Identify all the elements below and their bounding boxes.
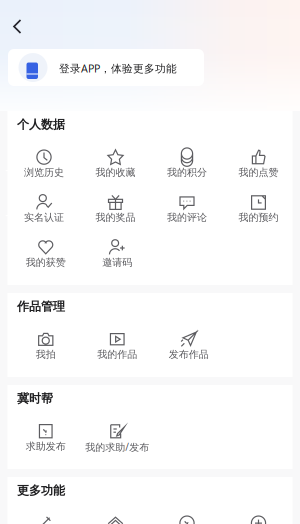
staticText: 我的奖品: [95, 211, 135, 224]
staticText: 发布作品: [169, 348, 209, 361]
staticText: 我拍: [36, 348, 56, 361]
button[interactable]: 我的求助/发布: [81, 422, 153, 467]
staticText: 我的点赞: [238, 166, 278, 179]
button[interactable]: 邀请码: [81, 238, 153, 283]
staticText: 登录APP，体验更多功能: [59, 61, 177, 75]
button[interactable]: Back: [6, 15, 30, 39]
button[interactable]: 浏览历史: [8, 148, 80, 193]
button[interactable]: 发布作品: [153, 330, 224, 375]
button[interactable]: 求助发布: [10, 422, 81, 467]
button[interactable]: 登录APP，体验更多功能: [8, 49, 204, 86]
button[interactable]: 设置: [8, 514, 80, 524]
button[interactable]: 我的奖品: [80, 193, 151, 238]
button[interactable]: 我拍: [10, 330, 81, 375]
staticText: 浏览历史: [24, 166, 64, 179]
staticText: 我的积分: [167, 166, 207, 179]
button[interactable]: 我的预约: [223, 193, 294, 238]
staticText: 我的评论: [167, 211, 207, 224]
button[interactable]: 实名认证: [8, 193, 80, 238]
staticText: 我的预约: [238, 211, 278, 224]
staticText: 求助发布: [26, 440, 66, 453]
staticText: 作品管理: [17, 299, 65, 314]
button[interactable]: 我的收藏: [80, 148, 151, 193]
button[interactable]: 我的积分: [151, 148, 223, 193]
button[interactable]: 我的点赞: [223, 148, 294, 193]
button[interactable]: 我的评论: [151, 193, 223, 238]
button[interactable]: 我的作品: [81, 330, 153, 375]
button[interactable]: 常见问题: [151, 514, 223, 524]
staticText: 实名认证: [24, 211, 64, 224]
button[interactable]: 关于我们: [223, 514, 294, 524]
staticText: 更多功能: [17, 483, 65, 498]
button[interactable]: 我的获赞: [10, 238, 81, 283]
button[interactable]: 首页: [80, 514, 151, 524]
staticText: 邀请码: [102, 256, 132, 269]
staticText: 我的作品: [97, 348, 137, 361]
staticText: 个人数据: [17, 117, 65, 132]
staticText: 冀时帮: [17, 391, 53, 406]
staticText: 我的收藏: [95, 166, 135, 179]
staticText: 我的求助/发布: [85, 440, 149, 454]
staticText: 我的获赞: [26, 256, 66, 269]
